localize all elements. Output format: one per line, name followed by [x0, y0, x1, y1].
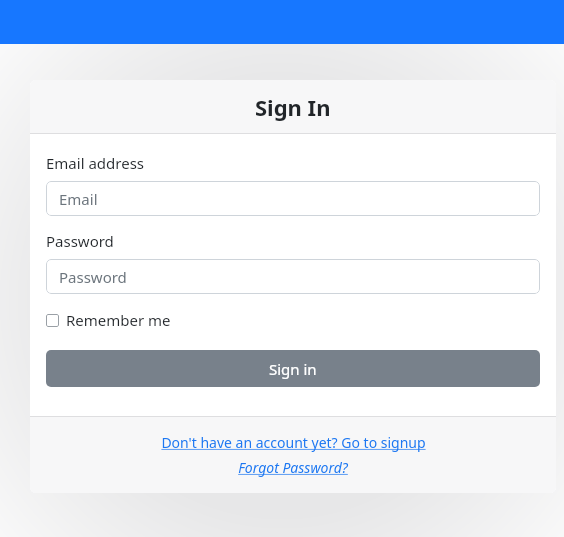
- staticText: Password: [46, 231, 114, 251]
- button[interactable]: Password: [46, 259, 540, 294]
- button[interactable]: Email: [46, 181, 540, 216]
- staticText: Remember me: [66, 310, 171, 330]
- staticText: Don't have an account yet? Go to signup: [161, 433, 426, 452]
- staticText: Forgot Password?: [238, 458, 348, 477]
- staticText: Password: [59, 267, 127, 287]
- staticText: Email: [59, 189, 98, 209]
- button[interactable]: Sign in: [46, 350, 540, 387]
- staticText: Sign in: [269, 359, 317, 379]
- button[interactable]: Remember me: [46, 308, 171, 332]
- button[interactable]: Forgot Password?: [238, 458, 348, 477]
- staticText: Sign In: [255, 92, 331, 122]
- button[interactable]: Don't have an account yet? Go to signup: [161, 433, 426, 452]
- staticText: Email address: [46, 153, 145, 173]
